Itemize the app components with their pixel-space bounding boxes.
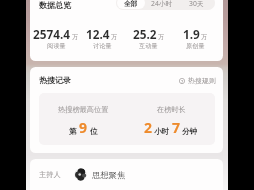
- button[interactable]: 30天: [179, 0, 214, 9]
- staticText: 2: [144, 118, 153, 137]
- staticText: 2574.4: [33, 26, 71, 42]
- staticText: 阅读量: [47, 42, 66, 50]
- staticText: 万: [111, 33, 118, 41]
- staticText: 讨论量: [93, 42, 112, 50]
- staticText: 小时: [154, 127, 170, 137]
- staticText: 7: [172, 118, 181, 137]
- staticText: 热搜规则: [188, 76, 216, 85]
- staticText: 思想聚焦: [92, 170, 126, 180]
- staticText: 位: [90, 127, 98, 137]
- staticText: 主持人: [39, 170, 61, 179]
- staticText: 热搜榜最高位置: [58, 105, 109, 114]
- other: 帮助: [179, 78, 185, 84]
- staticText: 12.4: [86, 26, 110, 42]
- button[interactable]: 全部: [117, 0, 145, 9]
- button[interactable]: 帮助: [179, 76, 216, 85]
- button[interactable]: 24小时: [145, 0, 179, 9]
- staticText: 25.2: [133, 26, 157, 42]
- staticText: 9: [79, 118, 88, 137]
- staticText: 万: [72, 33, 79, 41]
- staticText: 24小时: [151, 0, 173, 8]
- staticText: 原创量: [186, 42, 205, 50]
- staticText: 数据总览: [39, 0, 71, 10]
- staticText: 万: [158, 33, 165, 41]
- staticText: 热搜记录: [39, 75, 71, 85]
- staticText: 1.9: [183, 26, 200, 42]
- staticText: 互动量: [139, 42, 158, 50]
- staticText: 30天: [189, 0, 204, 8]
- staticText: 分钟: [182, 127, 198, 137]
- staticText: 第: [69, 127, 77, 137]
- staticText: ?: [181, 78, 184, 84]
- staticText: 万: [201, 33, 208, 41]
- staticText: 全部: [124, 0, 138, 8]
- staticText: 在榜时长: [157, 105, 186, 114]
